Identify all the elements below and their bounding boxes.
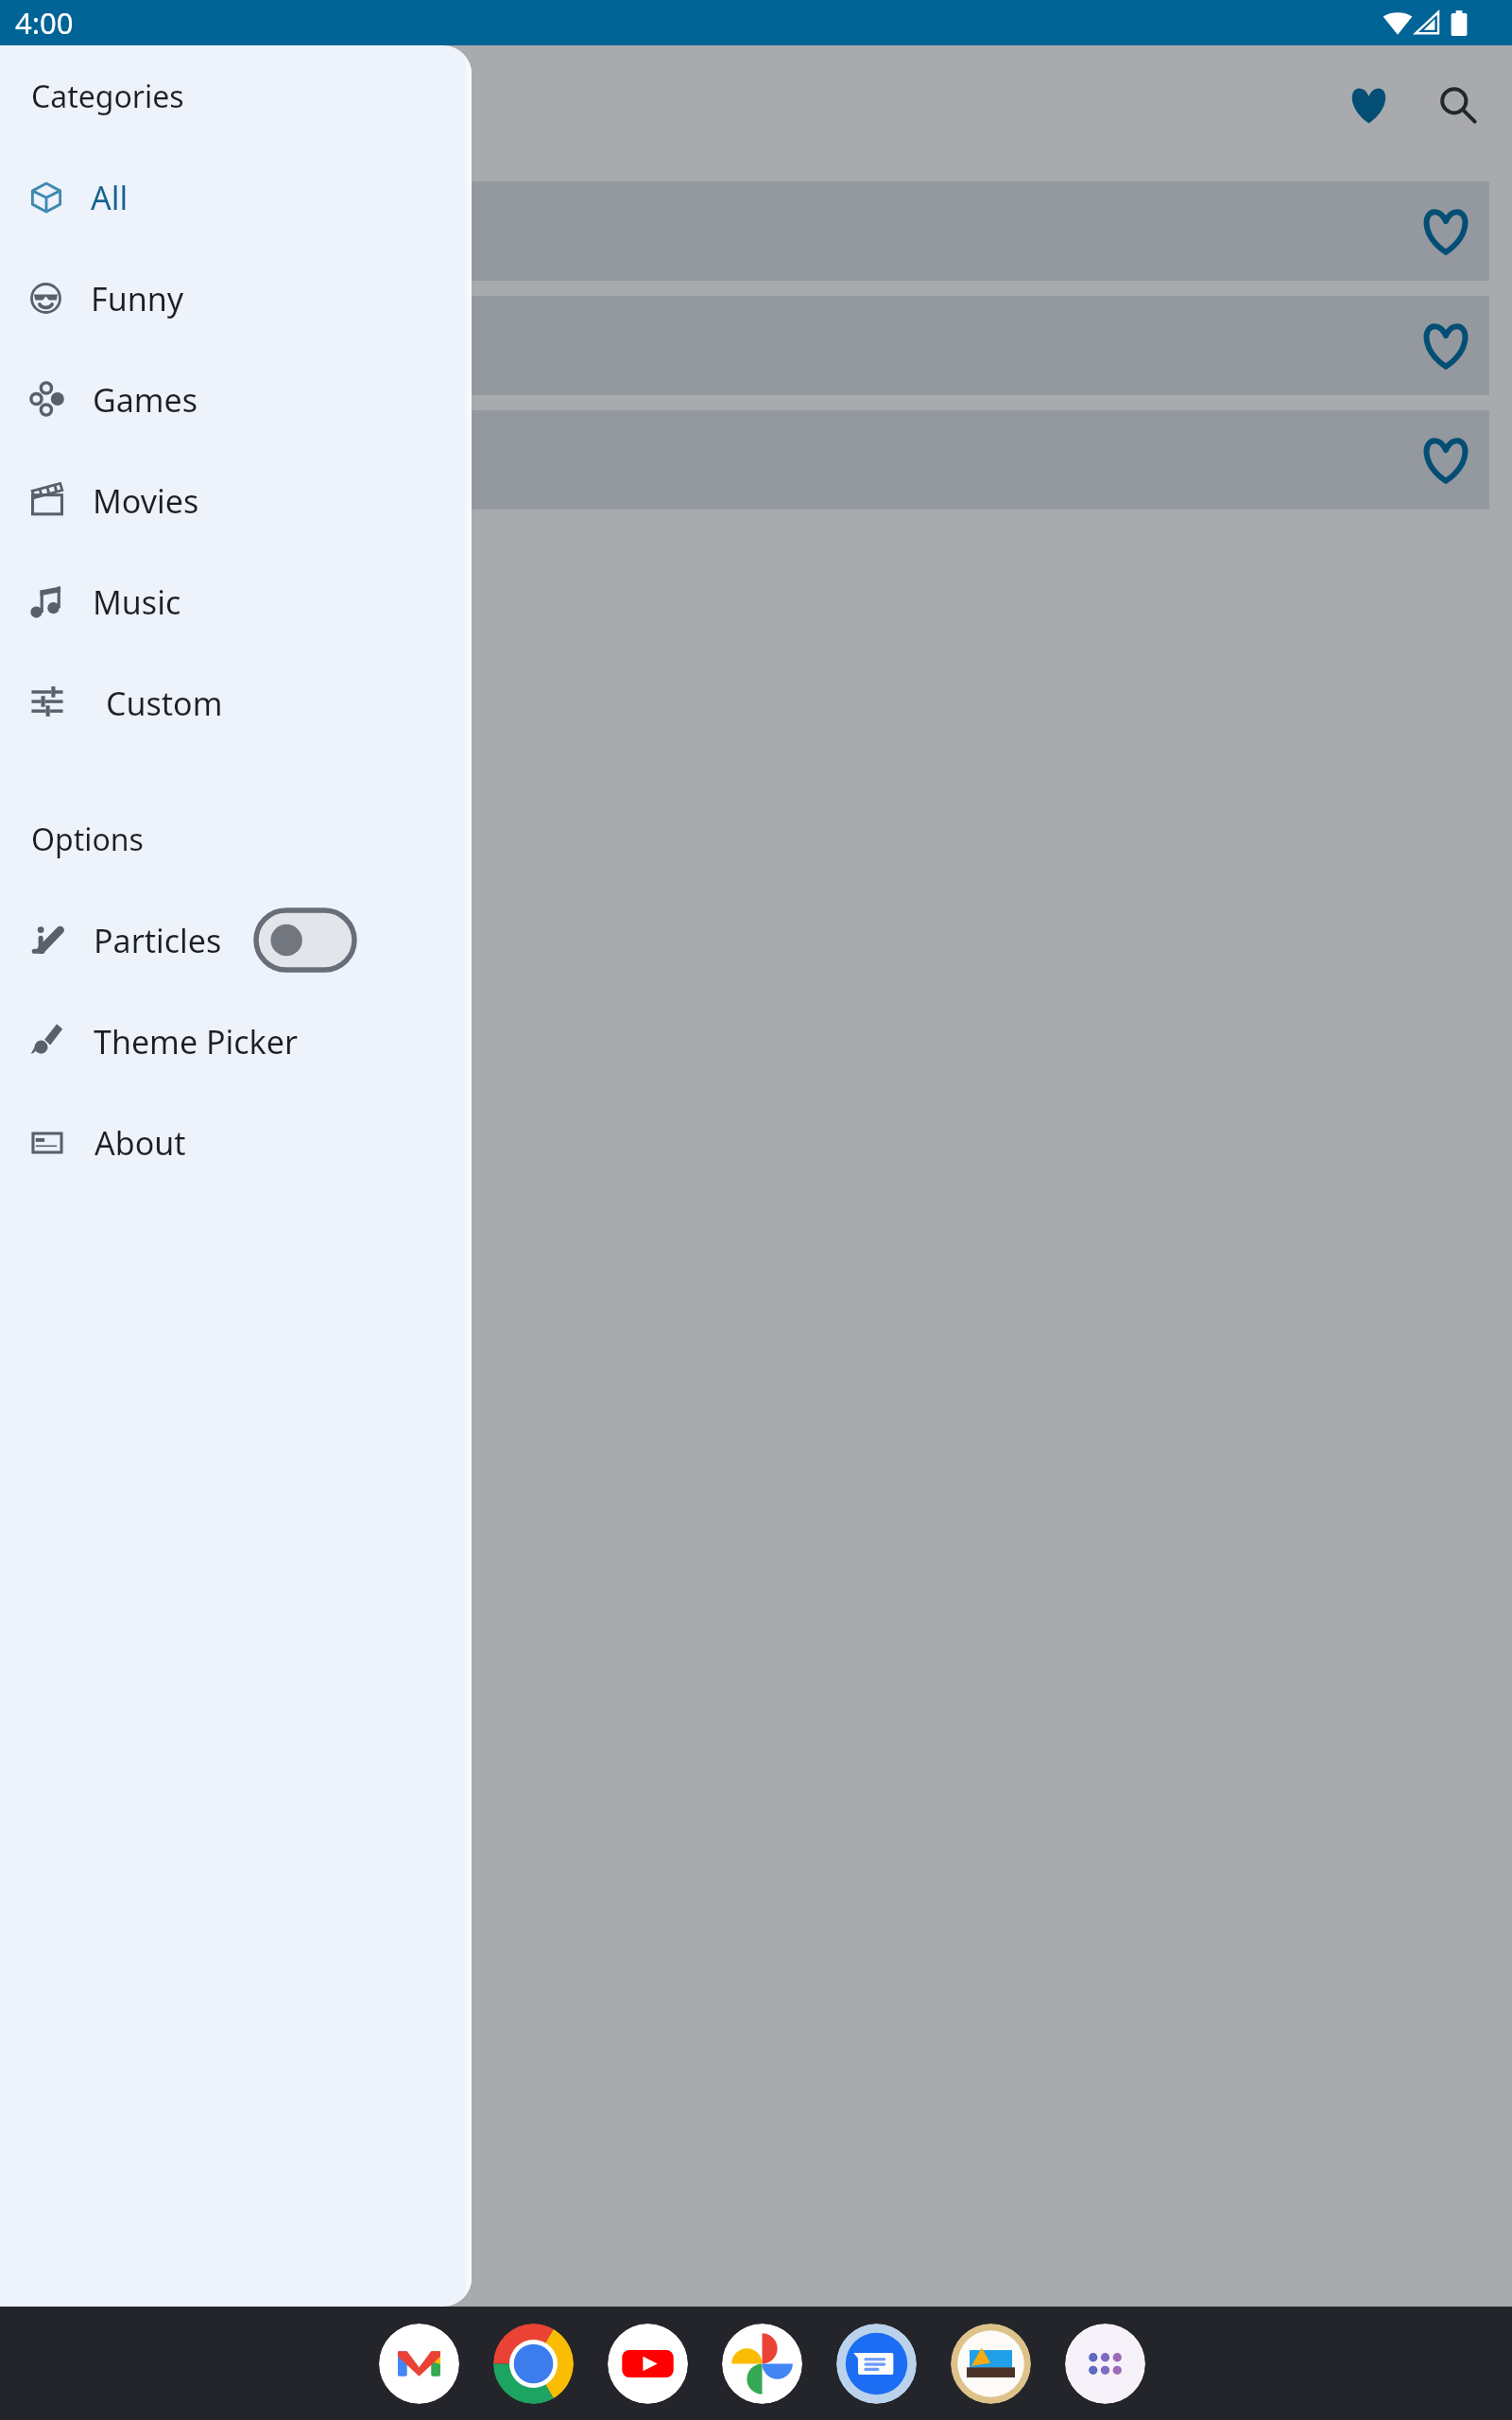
button[interactable]: Movies [0, 450, 472, 551]
button[interactable]: Favorite [1404, 306, 1484, 386]
staticText: 4:00 [15, 3, 74, 43]
staticText: Custom [106, 682, 223, 725]
button[interactable]: Particles [0, 890, 472, 991]
button[interactable]: Search [1426, 73, 1490, 137]
button[interactable]: Chrome [493, 2324, 574, 2404]
staticText: Games [93, 378, 198, 422]
button[interactable]: Funny [0, 248, 472, 349]
button[interactable]: Favorites [1336, 73, 1400, 137]
button[interactable] [256, 910, 354, 970]
button[interactable]: Games [0, 349, 472, 450]
button[interactable]: Music [0, 551, 472, 652]
staticText: Particles [94, 919, 222, 962]
staticText: Options [31, 819, 144, 860]
staticText: Music [93, 580, 181, 624]
staticText: Funny [91, 277, 184, 320]
button[interactable]: All apps [1065, 2324, 1145, 2404]
button[interactable]: Favorite [1404, 421, 1484, 500]
staticText: About [94, 1121, 186, 1165]
staticText: All [91, 176, 129, 219]
staticText: Theme Picker [94, 1020, 298, 1063]
button[interactable]: Theme Picker [0, 991, 472, 1092]
button[interactable]: Gmail [379, 2324, 459, 2404]
button[interactable]: Photos [722, 2324, 802, 2404]
button[interactable]: Item 2 [0, 296, 1489, 395]
staticText: Categories [31, 76, 184, 117]
button[interactable]: Favorite [1404, 192, 1484, 271]
button[interactable]: Files [951, 2324, 1031, 2404]
button[interactable]: Item 3 [0, 410, 1489, 510]
button[interactable]: Custom [0, 652, 472, 753]
button[interactable]: Item 1 [0, 181, 1489, 281]
staticText: Movies [93, 479, 199, 523]
button[interactable]: About [0, 1092, 472, 1193]
button[interactable]: YouTube [608, 2324, 688, 2404]
button[interactable]: All [0, 147, 472, 248]
button[interactable]: Messages [836, 2324, 917, 2404]
